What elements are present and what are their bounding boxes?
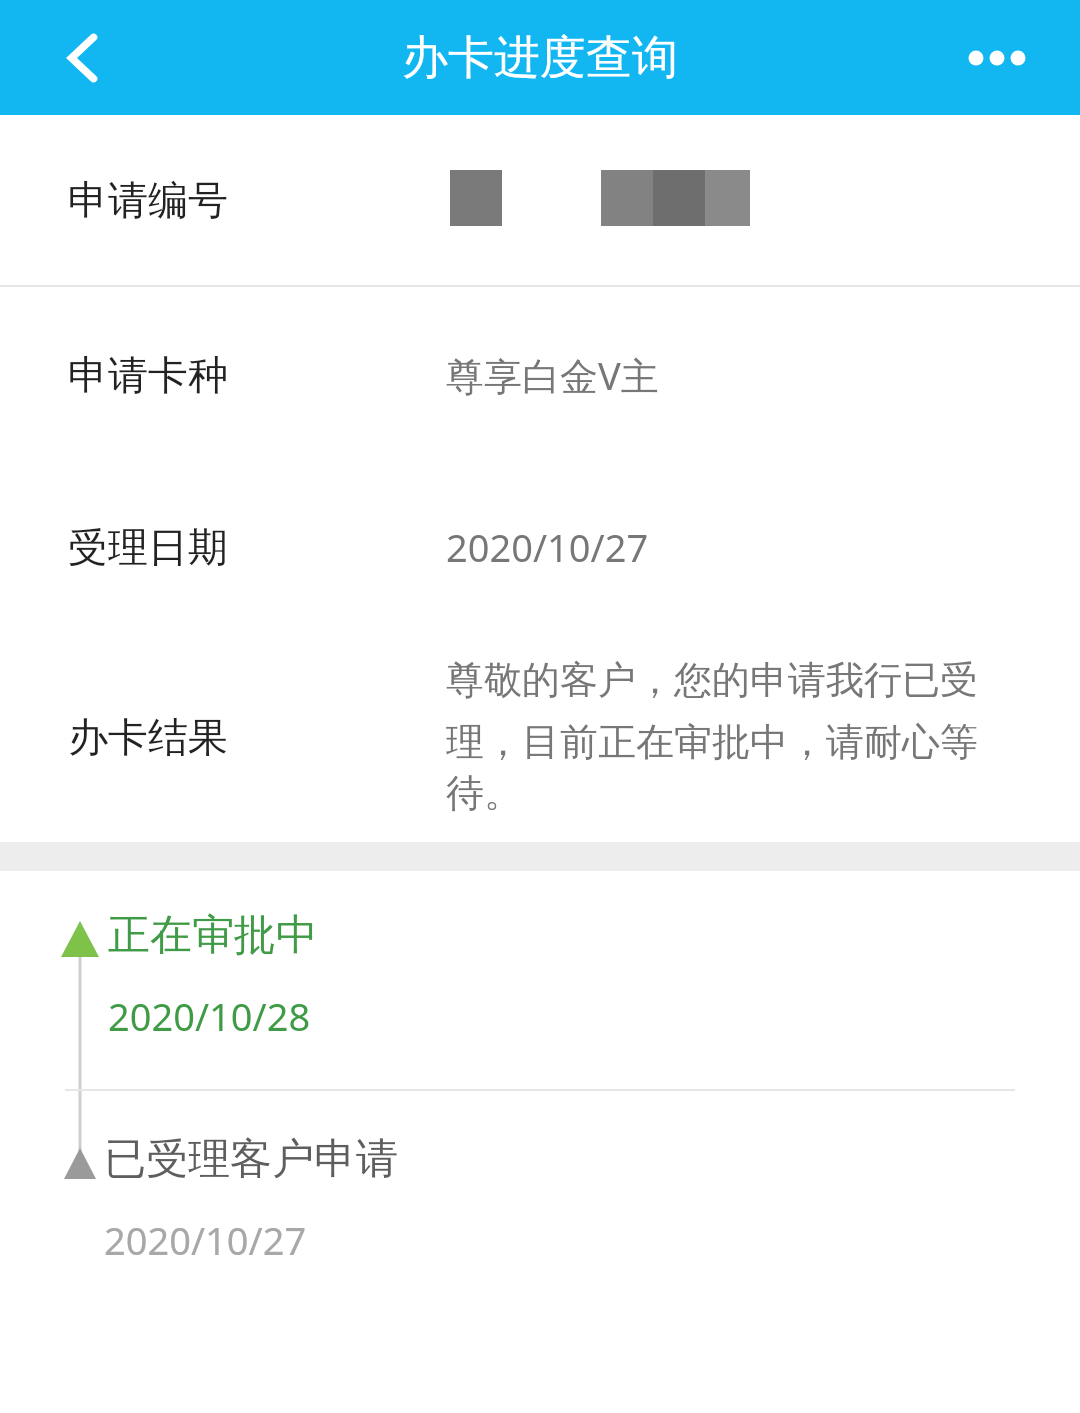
staticText: 已受理客户申请 xyxy=(104,1133,398,1186)
staticText: 办卡结果 xyxy=(68,712,228,762)
button[interactable]: 申请编号 xyxy=(0,115,1080,285)
staticText: 2020/10/27 xyxy=(104,1214,307,1266)
staticText: 2020/10/27 xyxy=(446,521,649,573)
staticText: 尊享白金V主 xyxy=(446,349,659,401)
button[interactable]: 已受理客户申请 xyxy=(104,1133,398,1266)
staticText: 申请编号 xyxy=(68,175,228,225)
staticText: 理，目前正在审批中，请耐心等待。 xyxy=(446,718,1026,818)
button[interactable]: 申请卡种 xyxy=(0,287,1080,462)
button[interactable]: Back xyxy=(36,10,132,106)
staticText: 受理日期 xyxy=(68,522,228,572)
staticText: 2020/10/28 xyxy=(108,990,311,1042)
staticText: 办卡进度查询 xyxy=(402,29,678,87)
button[interactable]: 办卡结果 xyxy=(0,632,1080,842)
staticText: 正在审批中 xyxy=(108,909,318,962)
staticText: 申请卡种 xyxy=(68,350,228,400)
button[interactable]: More options xyxy=(942,10,1052,106)
staticText: 尊敬的客户，您的申请我行已受 xyxy=(446,656,978,704)
button[interactable]: 受理日期 xyxy=(0,462,1080,632)
button[interactable]: 正在审批中 xyxy=(108,909,318,1042)
